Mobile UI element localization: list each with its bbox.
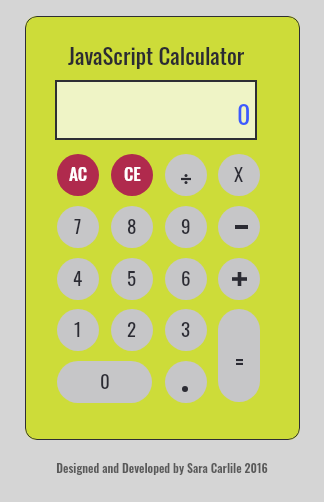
button[interactable]: 9 bbox=[165, 206, 207, 248]
button[interactable]: CE bbox=[111, 154, 153, 196]
staticText: 2 bbox=[127, 314, 137, 342]
button[interactable]: 3 bbox=[165, 309, 207, 351]
button[interactable]: 1 bbox=[57, 309, 99, 351]
button[interactable]: 8 bbox=[111, 206, 153, 248]
button[interactable]: Equals bbox=[218, 309, 260, 402]
staticText: 9 bbox=[181, 211, 191, 239]
button[interactable]: Minus bbox=[218, 206, 260, 248]
staticText: 0 bbox=[100, 366, 110, 394]
button[interactable]: Plus bbox=[218, 258, 260, 300]
button[interactable]: X bbox=[218, 154, 260, 196]
button[interactable]: Decimal point bbox=[165, 361, 207, 403]
staticText: 8 bbox=[127, 211, 137, 239]
staticText: 0 bbox=[237, 94, 251, 133]
button[interactable]: 4 bbox=[57, 258, 99, 300]
staticText: 1 bbox=[74, 314, 82, 342]
staticText: Designed and Developed by Sara Carlile 2… bbox=[0, 459, 324, 476]
staticText: 4 bbox=[73, 263, 83, 291]
staticText: JavaScript Calculator bbox=[68, 38, 245, 71]
staticText: 5 bbox=[127, 263, 137, 291]
button[interactable]: 6 bbox=[165, 258, 207, 300]
button[interactable]: 2 bbox=[111, 309, 153, 351]
staticText: 6 bbox=[181, 263, 191, 291]
button[interactable]: Divide bbox=[165, 154, 207, 196]
staticText: 3 bbox=[181, 314, 191, 342]
button[interactable]: 7 bbox=[57, 206, 99, 248]
staticText: 7 bbox=[74, 211, 82, 239]
staticText: CE bbox=[124, 160, 141, 186]
staticText: AC bbox=[69, 160, 88, 186]
button[interactable]: 0 bbox=[57, 361, 152, 403]
staticText: X bbox=[234, 159, 244, 187]
button[interactable]: 5 bbox=[111, 258, 153, 300]
button[interactable]: AC bbox=[57, 154, 99, 196]
